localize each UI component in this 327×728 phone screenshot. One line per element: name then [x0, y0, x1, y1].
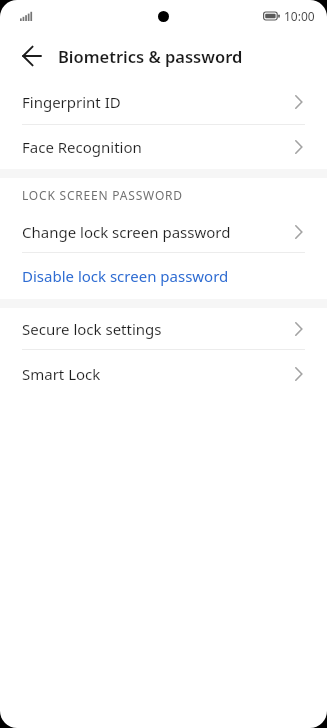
staticText: Smart Lock — [22, 364, 295, 384]
button[interactable]: Secure lock settings — [0, 308, 327, 349]
button[interactable] — [22, 46, 42, 66]
staticText: 10:00 — [284, 8, 315, 24]
button[interactable]: Fingerprint ID — [0, 80, 327, 124]
button[interactable]: Disable lock screen password — [0, 253, 327, 299]
staticText: LOCK SCREEN PASSWORD — [22, 187, 183, 203]
button[interactable]: Change lock screen password — [0, 211, 327, 252]
button[interactable]: Face Recognition — [0, 125, 327, 169]
staticText: Fingerprint ID — [22, 92, 295, 112]
staticText: Biometrics & password — [58, 45, 243, 67]
staticText: Change lock screen password — [22, 222, 295, 242]
staticText: Secure lock settings — [22, 319, 295, 339]
button[interactable]: Smart Lock — [0, 350, 327, 398]
staticText: Face Recognition — [22, 137, 295, 157]
staticText: Disable lock screen password — [22, 266, 303, 286]
